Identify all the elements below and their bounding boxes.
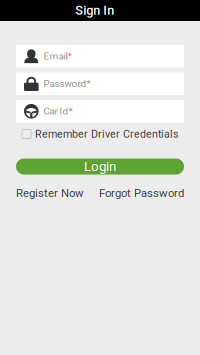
staticText: Password*	[44, 78, 91, 90]
button[interactable]: Login	[16, 158, 184, 174]
button[interactable]: Password*	[16, 72, 184, 95]
button[interactable]: Forgot Password	[99, 186, 184, 200]
button[interactable]: Remember Driver Credentials	[16, 127, 184, 140]
staticText: Login	[84, 159, 116, 174]
staticText: Sign In	[75, 3, 114, 18]
staticText: Email*	[44, 50, 72, 62]
staticText: Remember Driver Credentials	[35, 128, 179, 140]
staticText: Car Id*	[44, 105, 73, 117]
button[interactable]: Register Now	[16, 186, 84, 200]
staticText: Register Now	[16, 186, 84, 200]
staticText: Forgot Password	[99, 186, 184, 200]
button[interactable]: Car Id*	[16, 100, 184, 122]
button[interactable]: Email*	[16, 45, 184, 67]
